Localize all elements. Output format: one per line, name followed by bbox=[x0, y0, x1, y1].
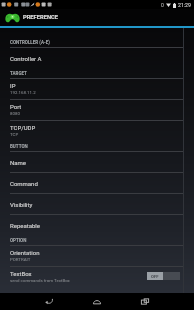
staticText: BUTTON bbox=[10, 144, 28, 149]
staticText: TCP/UDP bbox=[10, 124, 36, 131]
staticText: 0 bbox=[161, 2, 164, 8]
staticText: PREFERENCE bbox=[23, 14, 59, 21]
button[interactable]: TCP/UDP bbox=[0, 121, 194, 142]
staticText: Repeatable bbox=[10, 222, 40, 229]
button[interactable]: IP bbox=[0, 79, 194, 100]
staticText: Command bbox=[10, 180, 38, 187]
button[interactable]: Command bbox=[0, 173, 194, 194]
staticText: 21:29 bbox=[178, 2, 191, 8]
staticText: TCP bbox=[10, 132, 19, 137]
button[interactable]: Recents bbox=[134, 293, 156, 310]
staticText: 8080 bbox=[10, 111, 20, 116]
staticText: Name bbox=[10, 159, 26, 166]
staticText: Port bbox=[10, 103, 22, 110]
button[interactable]: Visibility bbox=[0, 194, 194, 215]
button[interactable]: PREFERENCE bbox=[0, 9, 194, 26]
staticText: send commands from TextBox bbox=[10, 278, 70, 283]
staticText: IP bbox=[10, 82, 16, 89]
button[interactable]: Controller A bbox=[0, 48, 194, 69]
button[interactable]: Orientation bbox=[0, 246, 194, 267]
button[interactable]: Repeatable bbox=[0, 215, 194, 236]
staticText: Visibility bbox=[10, 201, 33, 208]
button[interactable]: Back bbox=[38, 293, 60, 310]
button[interactable]: Home bbox=[86, 293, 108, 310]
button[interactable]: Port bbox=[0, 100, 194, 121]
staticText: Controller A bbox=[10, 55, 42, 62]
staticText: OFF bbox=[151, 274, 159, 279]
staticText: TextBox bbox=[10, 270, 32, 277]
staticText: 192.168.11.2 bbox=[10, 90, 36, 95]
staticText: OPTION bbox=[10, 238, 27, 243]
button[interactable]: TextBox bbox=[0, 267, 194, 288]
staticText: PORTRAIT bbox=[10, 257, 31, 262]
staticText: CONTROLLER (A-E) bbox=[10, 40, 50, 45]
staticText: TARGET bbox=[10, 71, 27, 76]
staticText: Orientation bbox=[10, 249, 40, 256]
button[interactable]: Name bbox=[0, 152, 194, 173]
